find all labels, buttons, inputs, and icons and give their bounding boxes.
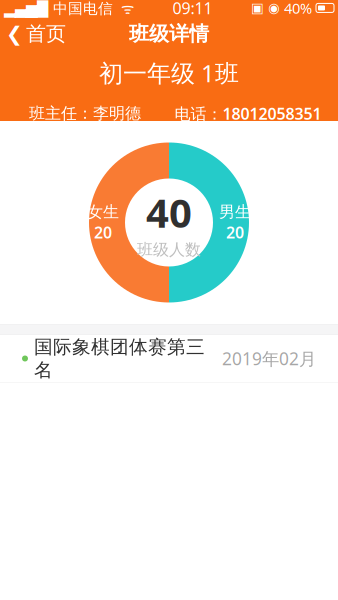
- staticText: ▣: [251, 0, 264, 15]
- staticText: 20: [94, 222, 112, 243]
- staticText: 40%: [284, 0, 312, 18]
- staticText: 男生: [219, 202, 251, 222]
- staticText: 09:11: [172, 0, 212, 18]
- staticText: 2019年02月: [222, 347, 316, 370]
- staticText: 女生: [87, 202, 119, 222]
- button[interactable]: 国际象棋团体赛第三名: [0, 335, 338, 382]
- staticText: 班级详情: [129, 22, 209, 46]
- staticText: ❮: [6, 23, 23, 45]
- staticText: 班主任：李明德: [29, 104, 141, 123]
- staticText: 国际象棋团体赛第三名: [34, 336, 205, 381]
- staticText: 电话：18012058351: [174, 103, 321, 124]
- staticText: 首页: [26, 22, 66, 46]
- staticText: 班级人数: [137, 240, 201, 259]
- staticText: ◉: [268, 0, 280, 15]
- staticText: ▂▄▆█ 中国电信 ᯤ: [4, 0, 134, 18]
- staticText: 初一年级 1班: [99, 57, 239, 89]
- button[interactable]: ❮: [0, 17, 74, 51]
- staticText: 40: [146, 186, 192, 239]
- staticText: 20: [226, 222, 244, 243]
